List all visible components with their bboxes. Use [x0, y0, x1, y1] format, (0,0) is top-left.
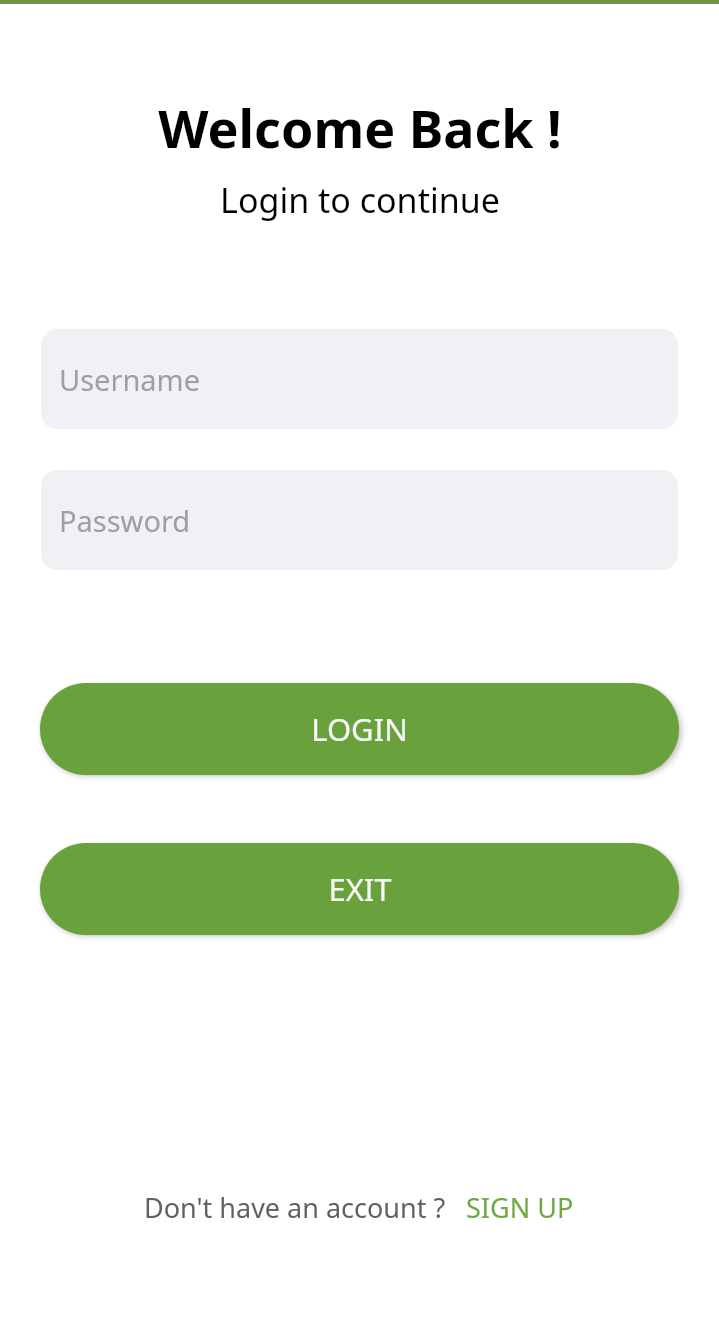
staticText: Login to continue	[220, 177, 500, 223]
staticText: LOGIN	[311, 708, 408, 750]
button[interactable]: SIGN UP	[464, 1187, 576, 1228]
button[interactable]: Username	[41, 329, 678, 429]
staticText: Welcome Back !	[158, 92, 562, 163]
button[interactable]: Password	[41, 470, 678, 570]
button[interactable]: LOGIN	[40, 683, 679, 775]
button[interactable]: EXIT	[40, 843, 679, 935]
staticText: Don't have an account ?	[144, 1189, 446, 1226]
staticText: SIGN UP	[466, 1189, 574, 1226]
staticText: Password	[59, 501, 191, 540]
staticText: Username	[59, 360, 201, 399]
staticText: EXIT	[328, 868, 392, 910]
